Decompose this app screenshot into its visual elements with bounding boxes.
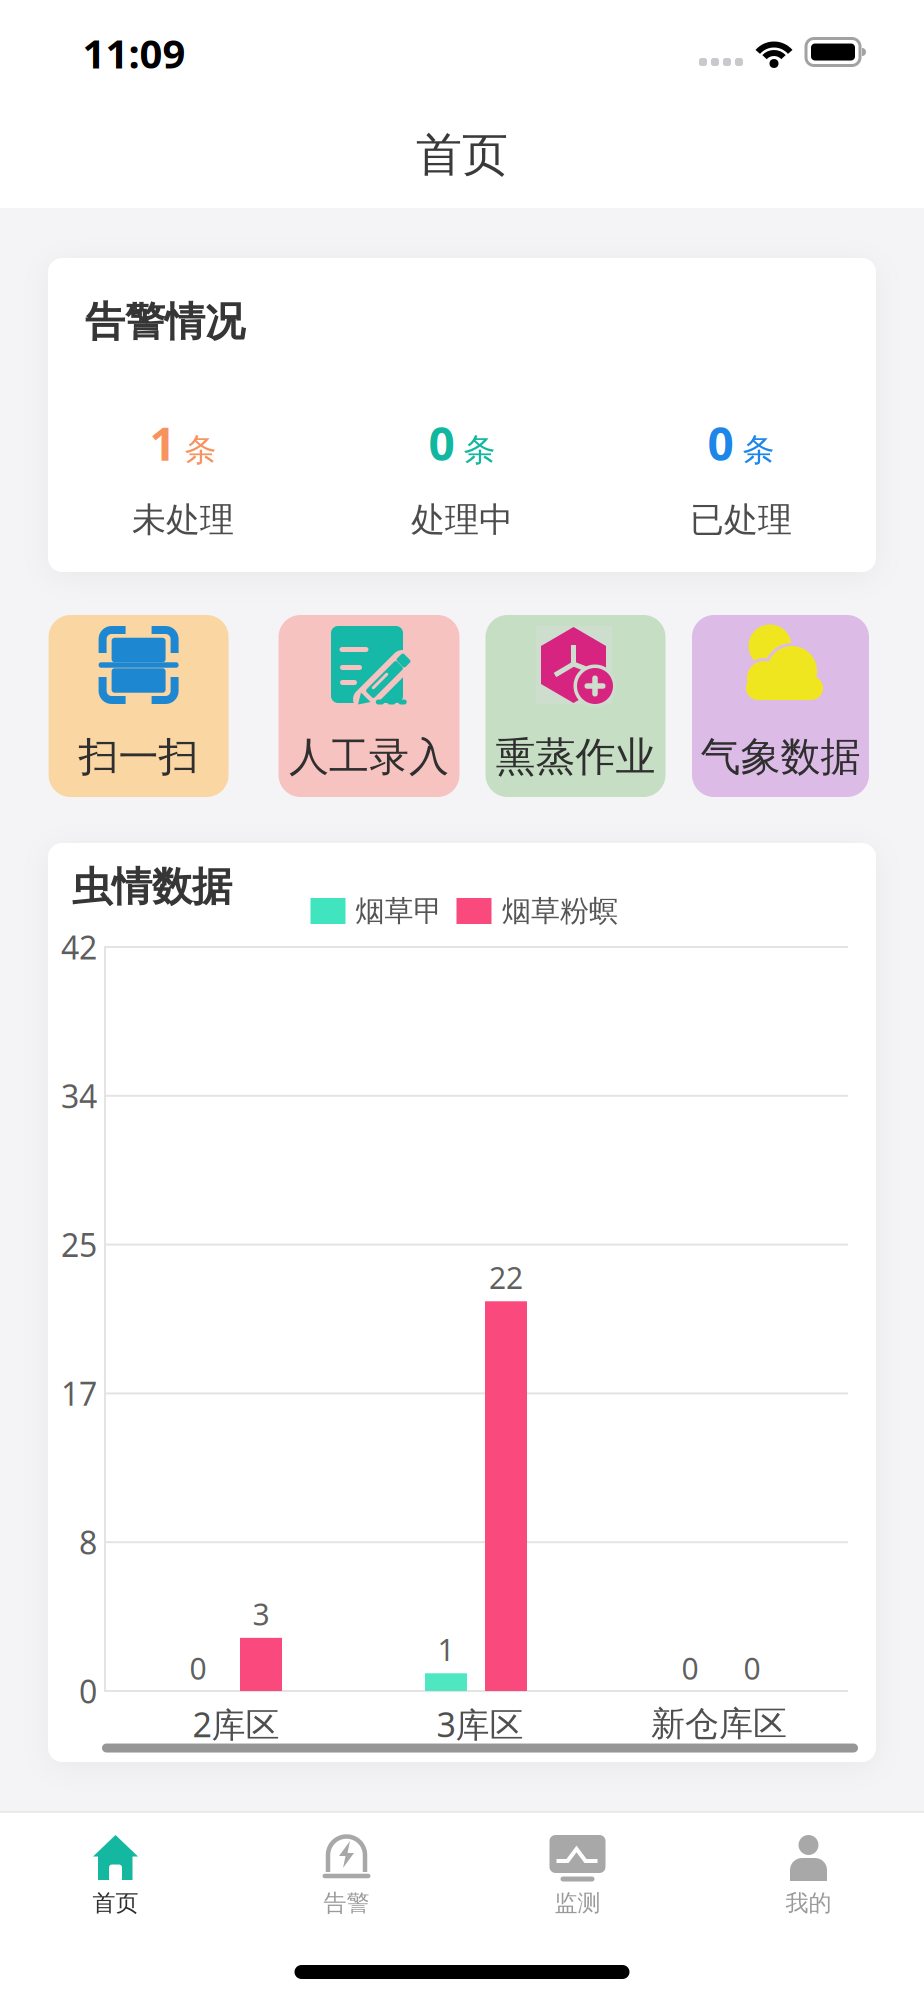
staticText: 条 (463, 430, 495, 470)
staticText: 17 (61, 1372, 97, 1415)
staticText: 熏蒸作业 (495, 732, 655, 782)
button[interactable]: 气象数据 (692, 615, 869, 797)
staticText: 首页 (416, 126, 508, 184)
staticText: 我的 (785, 1888, 831, 1917)
staticText: 0 (79, 1669, 97, 1713)
staticText: 扫一扫 (79, 732, 199, 782)
staticText: 8 (79, 1520, 97, 1564)
staticText: 1 (437, 1629, 454, 1670)
staticText: 0 (743, 1648, 760, 1688)
staticText: 人工录入 (289, 732, 449, 782)
staticText: 新仓库区 (651, 1703, 787, 1745)
staticText: 气象数据 (700, 732, 860, 782)
staticText: 首页 (92, 1888, 138, 1917)
button[interactable]: 首页 (0, 1812, 231, 1942)
staticText: 0 (189, 1648, 206, 1688)
staticText: 34 (61, 1074, 97, 1118)
staticText: 未处理 (132, 499, 234, 541)
button[interactable]: 监测 (462, 1812, 693, 1942)
staticText: 25 (61, 1223, 97, 1266)
staticText: 烟草甲 (355, 893, 442, 929)
staticText: 1 (149, 412, 175, 474)
staticText: 22 (489, 1257, 523, 1298)
staticText: 0 (681, 1648, 698, 1688)
staticText: 0 (428, 412, 454, 474)
staticText: 条 (184, 430, 216, 470)
staticText: 监测 (554, 1888, 600, 1917)
button[interactable]: 告警 (231, 1812, 462, 1942)
staticText: 烟草粉螟 (502, 893, 618, 929)
staticText: 11:09 (82, 26, 185, 80)
button[interactable]: 熏蒸作业 (485, 615, 665, 797)
staticText: 42 (61, 925, 97, 969)
staticText: 2库区 (192, 1701, 279, 1747)
staticText: 0 (707, 412, 733, 474)
button[interactable]: 我的 (693, 1812, 924, 1942)
staticText: 条 (742, 430, 774, 470)
staticText: 虫情数据 (72, 862, 232, 912)
staticText: 已处理 (690, 499, 792, 541)
staticText: 3库区 (436, 1701, 523, 1747)
button[interactable]: 人工录入 (278, 615, 459, 797)
staticText: 告警情况 (85, 297, 245, 347)
staticText: 告警 (323, 1888, 369, 1917)
staticText: 3 (252, 1593, 269, 1634)
staticText: 处理中 (411, 499, 513, 541)
button[interactable]: 扫一扫 (49, 615, 229, 797)
